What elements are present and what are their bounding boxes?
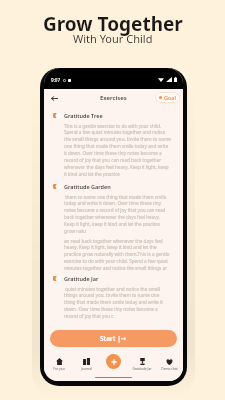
button[interactable]: Gratitude Tree bbox=[53, 112, 177, 119]
staticText: Demo chat bbox=[161, 367, 178, 371]
staticText: Journal bbox=[81, 367, 92, 371]
button[interactable]: Gratitude Garden bbox=[53, 183, 177, 190]
staticText: Start |→ bbox=[100, 334, 127, 343]
button[interactable]: Start |→ bbox=[50, 330, 177, 347]
staticText: This is a gentle exercise to do with you… bbox=[64, 123, 171, 177]
staticText: Goal bbox=[164, 94, 176, 101]
staticText: an read back together whenever the days … bbox=[64, 238, 171, 271]
button[interactable]: Add bbox=[106, 354, 121, 369]
staticText: Gratitude Garden bbox=[64, 183, 111, 190]
staticText: Gratitude Jar bbox=[132, 367, 152, 371]
button[interactable]: Demo chat bbox=[158, 358, 180, 371]
button[interactable]: Gratitude Jar bbox=[131, 358, 153, 371]
staticText: Exercises bbox=[100, 94, 127, 102]
staticText: quiet minutes together and notice the sm… bbox=[64, 286, 171, 319]
staticText: For you bbox=[53, 367, 65, 371]
staticText: Gratitude Jar bbox=[64, 275, 99, 282]
button[interactable]: Goal bbox=[155, 92, 180, 103]
staticText: them to name one thing that made them sm… bbox=[64, 194, 171, 234]
button[interactable]: Gratitude Jar bbox=[53, 275, 177, 282]
button[interactable]: For you bbox=[48, 358, 70, 371]
staticText: Gratitude Tree bbox=[64, 112, 103, 119]
staticText: With Your Child bbox=[73, 31, 153, 46]
button[interactable]: Journal bbox=[75, 358, 97, 371]
staticText: Grow Together bbox=[43, 11, 183, 37]
staticText: 9:07 bbox=[51, 77, 61, 83]
button[interactable]: Back bbox=[48, 92, 60, 104]
